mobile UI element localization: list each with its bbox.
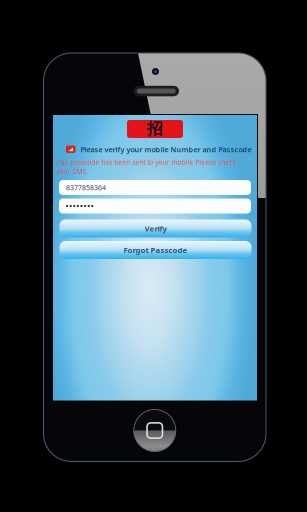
staticText: Please verify your mobile Number and Pas…: [80, 144, 251, 154]
staticText: Verify: [144, 223, 166, 234]
staticText: The passcode has been sent to your mobil…: [56, 157, 236, 176]
staticText: 8377858364: [66, 183, 106, 192]
button[interactable]: Forgot Passcode: [59, 241, 251, 259]
staticText: 招: [147, 119, 163, 139]
button[interactable]: Verify: [59, 219, 251, 237]
staticText: Forgot Passcode: [123, 245, 187, 255]
